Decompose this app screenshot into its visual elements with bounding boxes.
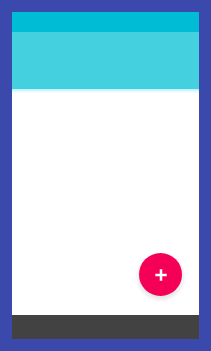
button[interactable]: Add	[139, 253, 182, 296]
